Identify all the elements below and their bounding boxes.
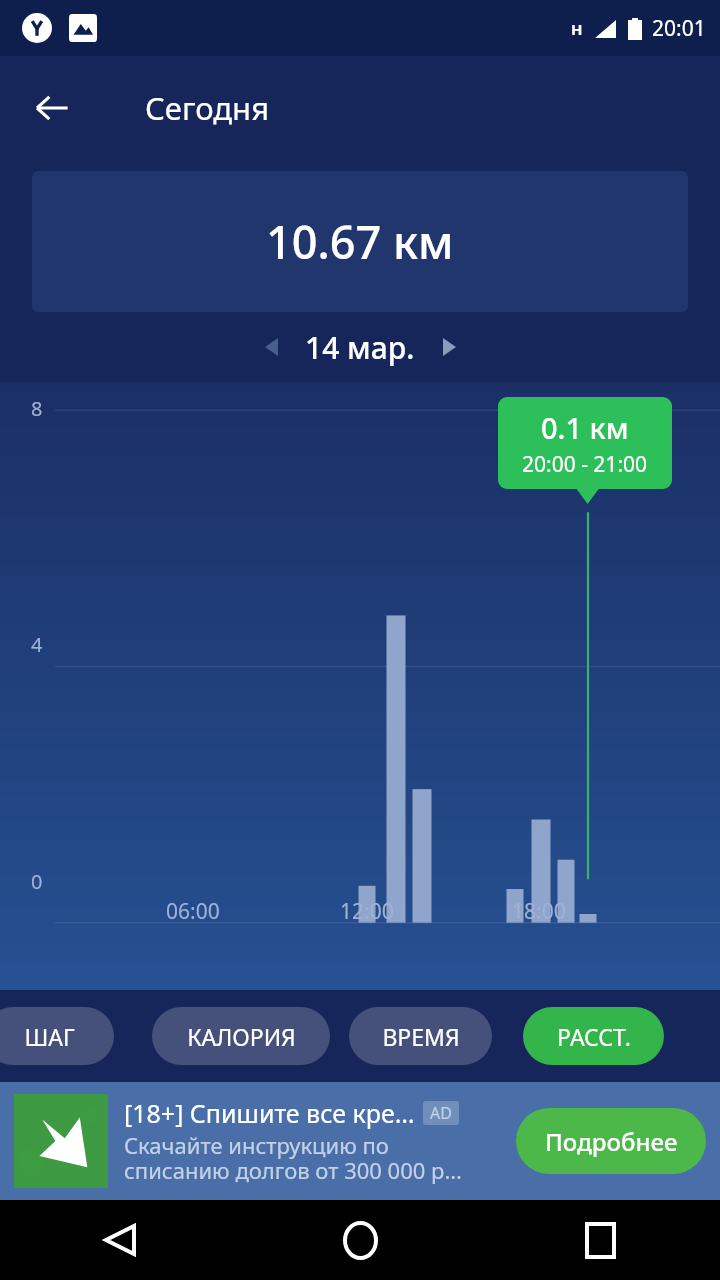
- button[interactable]: Home: [240, 1200, 480, 1280]
- button[interactable]: Recent apps: [480, 1200, 720, 1280]
- staticText: AD: [430, 1102, 452, 1124]
- staticText: 20:00 - 21:00: [522, 450, 648, 479]
- staticText: 8: [31, 395, 43, 422]
- staticText: 20:01: [652, 14, 706, 43]
- staticText: 06:00: [166, 897, 220, 926]
- button[interactable]: Previous day: [249, 325, 293, 369]
- staticText: 18:00: [512, 897, 566, 926]
- button[interactable]: РАССТ.: [523, 1007, 664, 1065]
- staticText: 4: [31, 631, 43, 658]
- button[interactable]: ШАГ: [0, 1007, 114, 1065]
- staticText: Скачайте инструкцию по списанию долгов о…: [124, 1130, 462, 1186]
- staticText: Подробнее: [545, 1125, 678, 1158]
- button[interactable]: Next day: [427, 325, 471, 369]
- staticText: [18+] Спишите все кре…: [124, 1096, 415, 1130]
- button[interactable]: 0.1 км: [498, 397, 672, 489]
- staticText: H: [571, 19, 583, 39]
- button[interactable]: Подробнее: [516, 1108, 706, 1174]
- staticText: КАЛОРИЯ: [187, 1021, 296, 1052]
- button[interactable]: 14 мар.: [305, 327, 415, 368]
- staticText: 0: [31, 868, 43, 895]
- staticText: РАССТ.: [557, 1021, 631, 1052]
- staticText: ШАГ: [24, 1021, 75, 1052]
- button[interactable]: 10.67 км: [32, 171, 688, 312]
- staticText: 12:00: [340, 897, 394, 926]
- staticText: ВРЕМЯ: [382, 1021, 460, 1052]
- staticText: 0.1 км: [541, 408, 629, 447]
- staticText: Сегодня: [145, 87, 270, 129]
- button[interactable]: Back: [22, 78, 82, 138]
- button[interactable]: [18+] Спишите все кре…: [14, 1082, 706, 1200]
- button[interactable]: КАЛОРИЯ: [152, 1007, 330, 1065]
- button[interactable]: ВРЕМЯ: [349, 1007, 492, 1065]
- button[interactable]: Back: [0, 1200, 240, 1280]
- staticText: 10.67 км: [266, 211, 454, 272]
